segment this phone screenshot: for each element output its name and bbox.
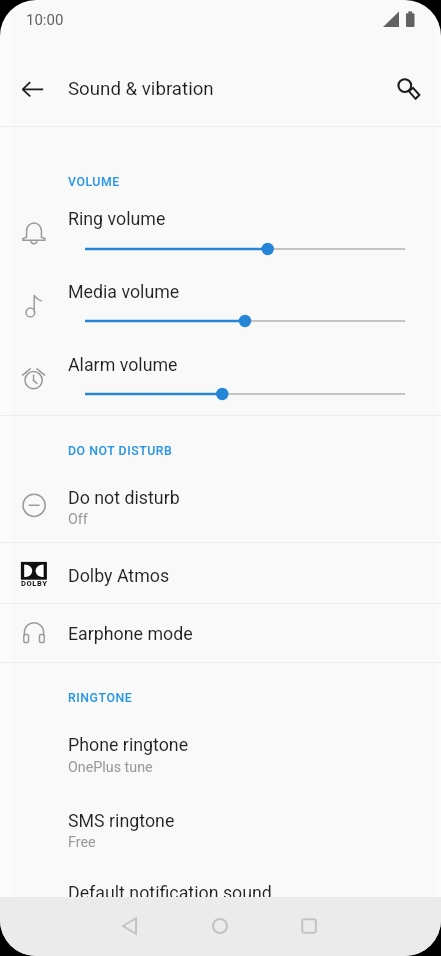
staticText: VOLUME <box>68 175 120 189</box>
staticText: Ring volume <box>68 208 166 229</box>
staticText: Free <box>68 834 96 851</box>
button[interactable]: Back <box>98 897 162 956</box>
staticText: Hangouts Message <box>68 906 192 923</box>
button[interactable]: Home <box>188 897 252 956</box>
staticText: Phone ringtone <box>68 734 189 755</box>
staticText: RINGTONE <box>68 691 133 705</box>
button[interactable]: Recents <box>277 897 341 956</box>
staticText: DO NOT DISTURB <box>68 444 173 458</box>
staticText: Media volume <box>68 281 180 302</box>
staticText: 10:00 <box>26 11 64 29</box>
staticText: Alarm volume <box>68 354 178 375</box>
button[interactable]: SMS ringtone <box>0 789 441 861</box>
staticText: SMS ringtone <box>68 810 175 831</box>
staticText: Default notification sound <box>68 882 272 903</box>
button[interactable]: Dolby Atmos <box>0 543 441 603</box>
staticText: Do not disturb <box>68 487 180 508</box>
staticText: Dolby Atmos <box>68 565 170 586</box>
button[interactable]: Do not disturb <box>0 470 441 542</box>
button[interactable]: Alarm volume <box>0 334 441 409</box>
button[interactable]: Default notification sound <box>0 861 441 933</box>
button[interactable]: Search <box>384 66 432 114</box>
staticText: OnePlus tune <box>68 759 153 776</box>
button[interactable]: Ring volume <box>0 190 441 265</box>
staticText: DOLBY <box>21 579 48 588</box>
button[interactable]: Media volume <box>0 262 441 337</box>
button[interactable]: Back <box>9 65 57 113</box>
staticText: Off <box>68 511 88 528</box>
other: Signal and battery <box>380 10 420 30</box>
staticText: Sound & vibration <box>68 78 214 100</box>
staticText: Earphone mode <box>68 623 193 644</box>
button[interactable]: Phone ringtone <box>0 717 441 789</box>
button[interactable]: Earphone mode <box>0 604 441 662</box>
